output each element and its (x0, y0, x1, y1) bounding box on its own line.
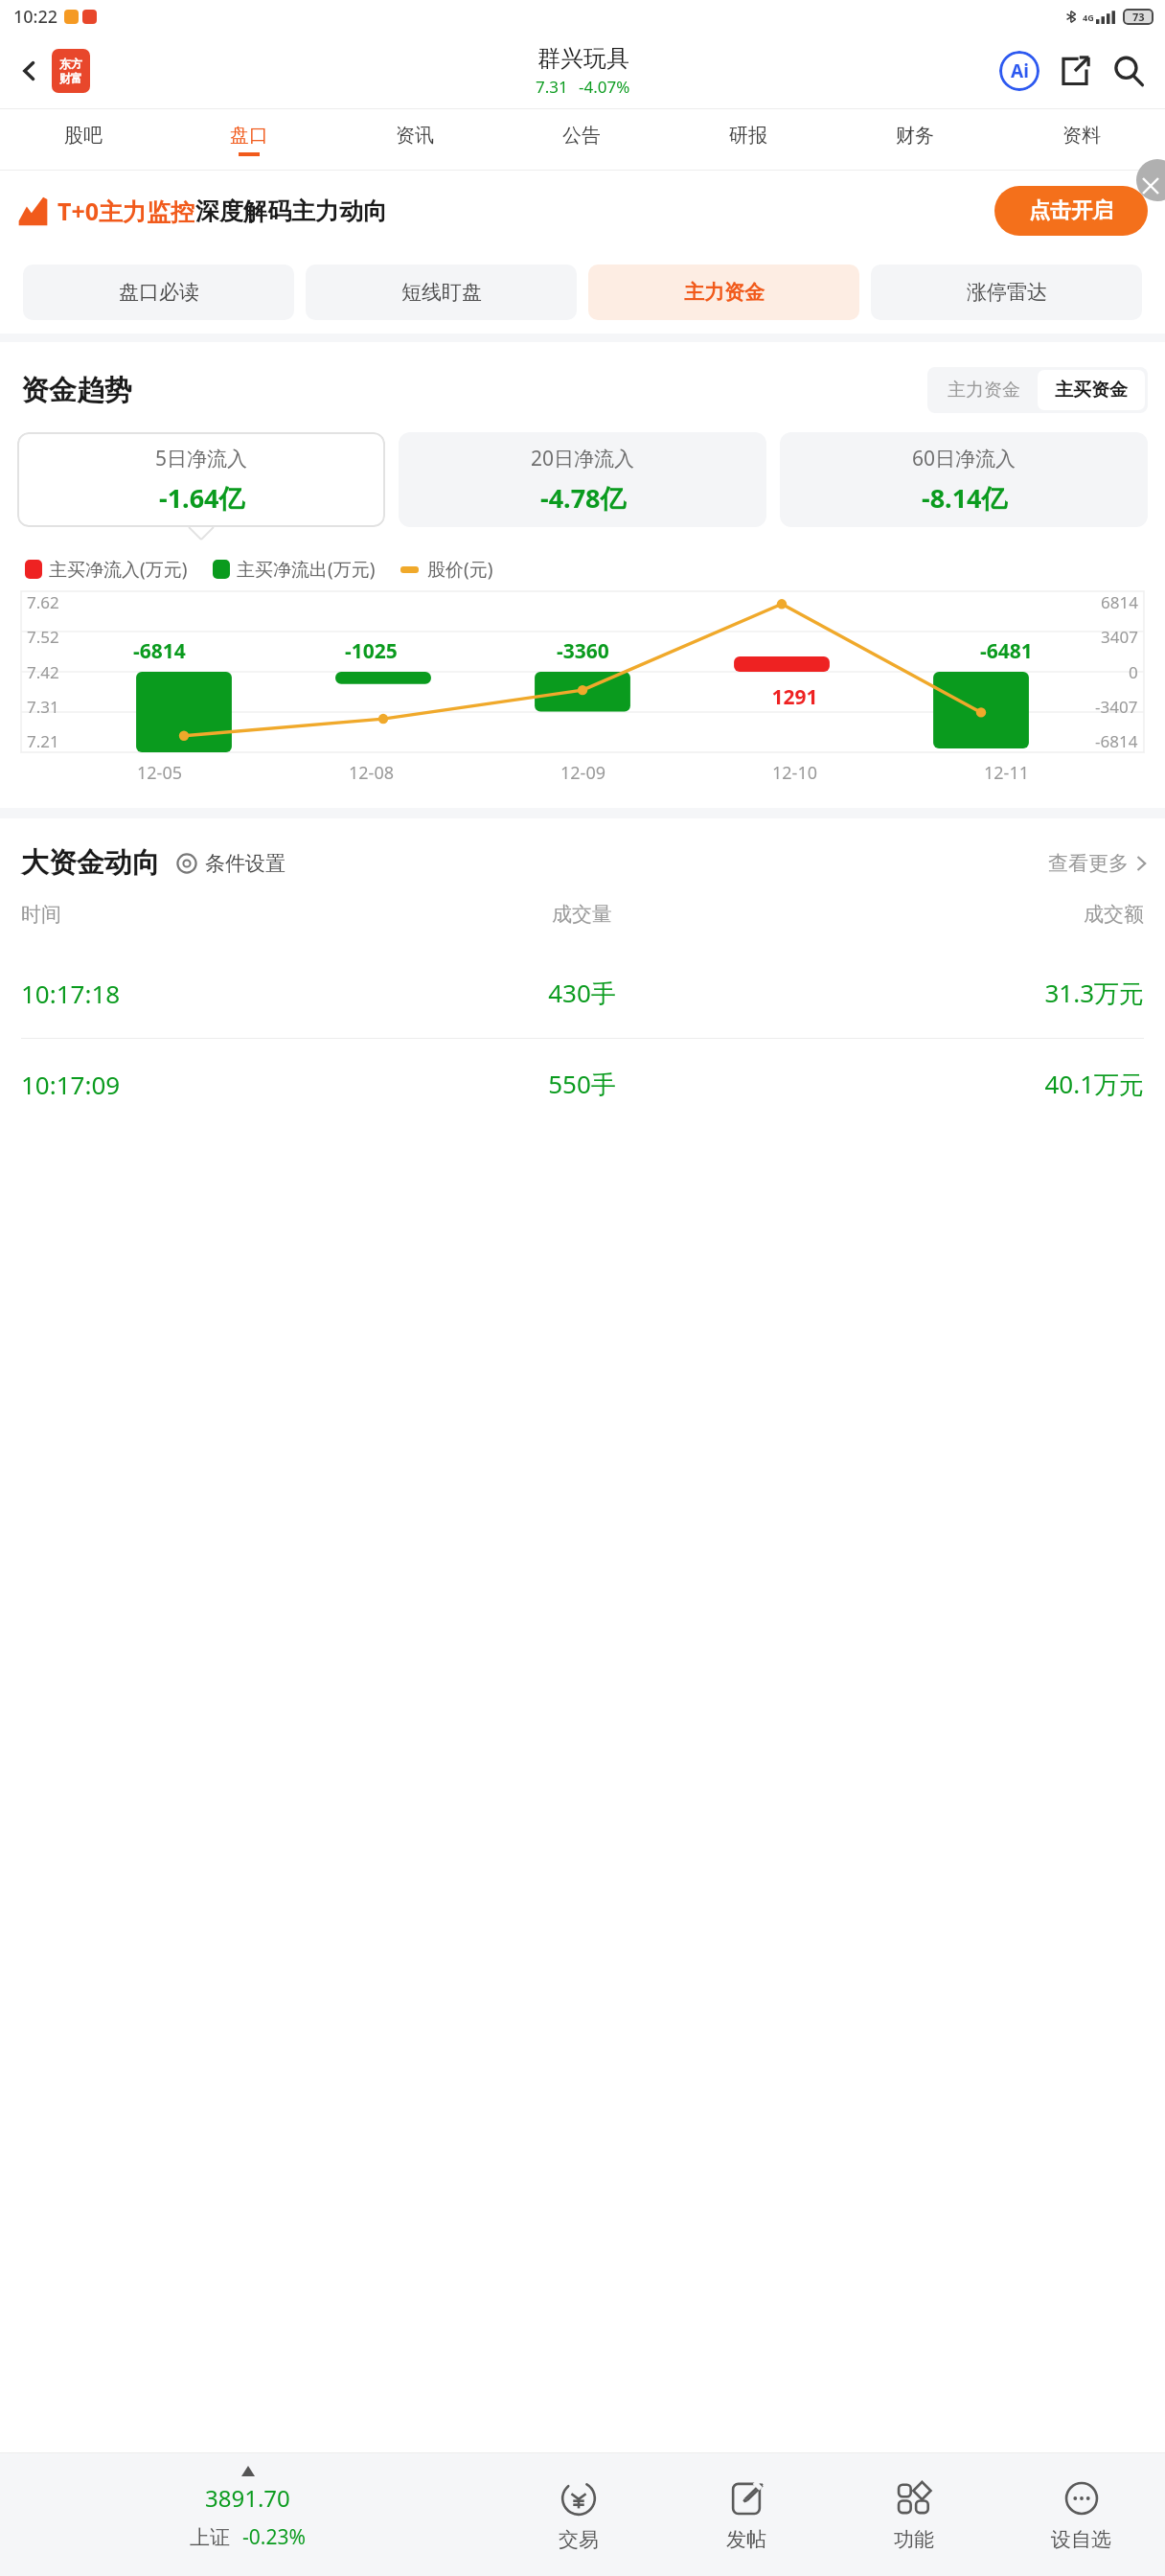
button[interactable]: 股吧 (0, 109, 166, 170)
button[interactable]: 60日净流入 (780, 432, 1148, 527)
staticText: -4.07% (579, 76, 630, 98)
button[interactable]: 查看更多 (1048, 851, 1148, 876)
staticText: -3360 (557, 637, 609, 665)
button[interactable]: 财务 (832, 109, 998, 170)
staticText: 550手 (395, 1067, 769, 1101)
button[interactable]: 20日净流入 (399, 432, 766, 527)
button[interactable]: 发帖 (662, 2453, 830, 2576)
staticText: 条件设置 (205, 851, 286, 876)
staticText: 430手 (395, 976, 769, 1010)
staticText: 0 (1129, 661, 1138, 683)
button[interactable]: 资料 (998, 109, 1165, 170)
staticText: 交易 (559, 2527, 599, 2552)
staticText: 股价(元) (427, 557, 493, 582)
staticText: 主买资金 (1055, 379, 1128, 402)
button[interactable]: 公告 (498, 109, 665, 170)
staticText: 上证 (190, 2525, 230, 2550)
staticText: 公告 (562, 124, 601, 148)
staticText: 时间 (21, 902, 395, 927)
staticText: 查看更多 (1048, 851, 1129, 876)
staticText: 盘口必读 (119, 280, 199, 305)
staticText: 功能 (894, 2527, 934, 2552)
staticText: 10:17:09 (21, 1068, 395, 1101)
staticText: 73 (1132, 10, 1145, 24)
staticText: 深度解码主力动向 (195, 196, 387, 226)
staticText: -8.14亿 (922, 480, 1008, 516)
staticText: 6814 (1101, 591, 1138, 613)
button[interactable]: 3891.70 (0, 2453, 494, 2576)
staticText: 盘口 (230, 124, 268, 148)
staticText: -6481 (980, 637, 1033, 665)
staticText: 40.1万元 (769, 1067, 1144, 1101)
staticText: 7.52 (27, 626, 59, 648)
staticText: -6814 (1095, 730, 1138, 752)
staticText: 10:17:18 (21, 977, 395, 1010)
staticText: 群兴玩具 (537, 44, 629, 73)
staticText: 7.62 (27, 591, 59, 613)
staticText: -6814 (133, 637, 186, 665)
button[interactable]: 5日净流入 (17, 432, 385, 527)
staticText: 7.31 (536, 76, 568, 98)
staticText: 12-10 (772, 761, 817, 785)
staticText: 7.42 (27, 661, 59, 683)
staticText: 资讯 (396, 124, 434, 148)
staticText: -1025 (345, 637, 398, 665)
staticText: 短线盯盘 (401, 280, 482, 305)
staticText: 发帖 (726, 2527, 766, 2552)
button[interactable]: AI assistant (996, 48, 1042, 94)
staticText: 7.21 (27, 730, 59, 752)
staticText: 东方 (59, 57, 82, 71)
staticText: 设自选 (1051, 2527, 1111, 2552)
staticText: 12-11 (984, 761, 1029, 785)
staticText: 资金趋势 (21, 373, 132, 408)
button[interactable]: 条件设置 (175, 851, 286, 876)
button[interactable]: 东方 (52, 49, 90, 93)
staticText: 研报 (729, 124, 767, 148)
staticText: -1.64亿 (159, 480, 245, 516)
staticText: 主力资金 (684, 280, 765, 305)
staticText: 5日净流入 (155, 445, 248, 472)
staticText: 主力资金 (948, 379, 1020, 402)
button[interactable]: 短线盯盘 (306, 264, 577, 320)
staticText: Ai (1011, 58, 1029, 83)
staticText: 12-09 (560, 761, 605, 785)
button[interactable]: 研报 (665, 109, 832, 170)
button[interactable]: Close ad (1136, 159, 1165, 201)
staticText: -4.78亿 (540, 480, 627, 516)
button[interactable]: 点击开启 (994, 186, 1148, 236)
button[interactable]: 交易 (494, 2453, 662, 2576)
button[interactable]: 主买资金 (1038, 370, 1145, 410)
staticText: 7.31 (27, 696, 59, 718)
button[interactable]: Back (8, 49, 52, 93)
staticText: 点击开启 (1029, 197, 1113, 224)
staticText: 主买净流入(万元) (49, 557, 188, 582)
button[interactable]: 盘口 (166, 109, 331, 170)
button[interactable]: 涨停雷达 (871, 264, 1142, 320)
staticText: 3891.70 (205, 2482, 290, 2514)
button[interactable]: 主力资金 (930, 370, 1038, 410)
button[interactable]: 主力资金 (588, 264, 859, 320)
button[interactable]: 资讯 (331, 109, 498, 170)
staticText: 31.3万元 (769, 976, 1144, 1010)
button[interactable]: 功能 (830, 2453, 997, 2576)
button[interactable]: 10:17:18 (0, 948, 1165, 1038)
button[interactable]: Search (1106, 48, 1152, 94)
button[interactable]: Share (1052, 48, 1098, 94)
staticText: 主买净流出(万元) (237, 557, 376, 582)
staticText: 资料 (1062, 124, 1101, 148)
button[interactable]: 盘口必读 (23, 264, 294, 320)
button[interactable]: 设自选 (997, 2453, 1165, 2576)
staticText: 财务 (896, 124, 934, 148)
staticText: 60日净流入 (912, 445, 1017, 472)
staticText: 大资金动向 (21, 845, 160, 881)
staticText: 12-05 (137, 761, 182, 785)
staticText: 财富 (59, 71, 82, 85)
staticText: 12-08 (349, 761, 394, 785)
staticText: 20日净流入 (531, 445, 635, 472)
staticText: -3407 (1095, 696, 1138, 718)
staticText: -0.23% (242, 2523, 306, 2551)
button[interactable]: 10:17:09 (0, 1039, 1165, 1129)
staticText: 10:22 (13, 5, 58, 29)
staticText: T+0主力监控 (57, 195, 195, 227)
staticText: 股吧 (64, 124, 103, 148)
